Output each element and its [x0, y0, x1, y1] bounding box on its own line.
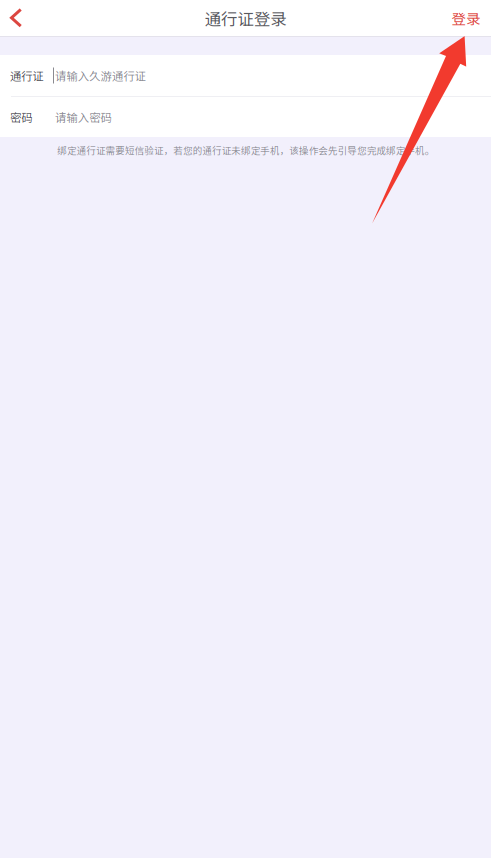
staticText: 通行证登录	[205, 6, 286, 30]
staticText: 请输入密码	[55, 109, 112, 125]
staticText: 登录	[452, 8, 480, 28]
staticText: 密码	[10, 109, 32, 125]
staticText: 请输入久游通行证	[55, 67, 146, 84]
button[interactable]: 通行证	[0, 55, 491, 96]
button[interactable]: 返回	[0, 0, 33, 36]
button[interactable]: 密码	[0, 97, 491, 137]
staticText: 绑定通行证需要短信验证，若您的通行证未绑定手机，该操作会先引导您完成绑定手机。	[57, 143, 434, 157]
staticText: 通行证	[10, 67, 43, 84]
button[interactable]: 登录	[452, 0, 491, 36]
